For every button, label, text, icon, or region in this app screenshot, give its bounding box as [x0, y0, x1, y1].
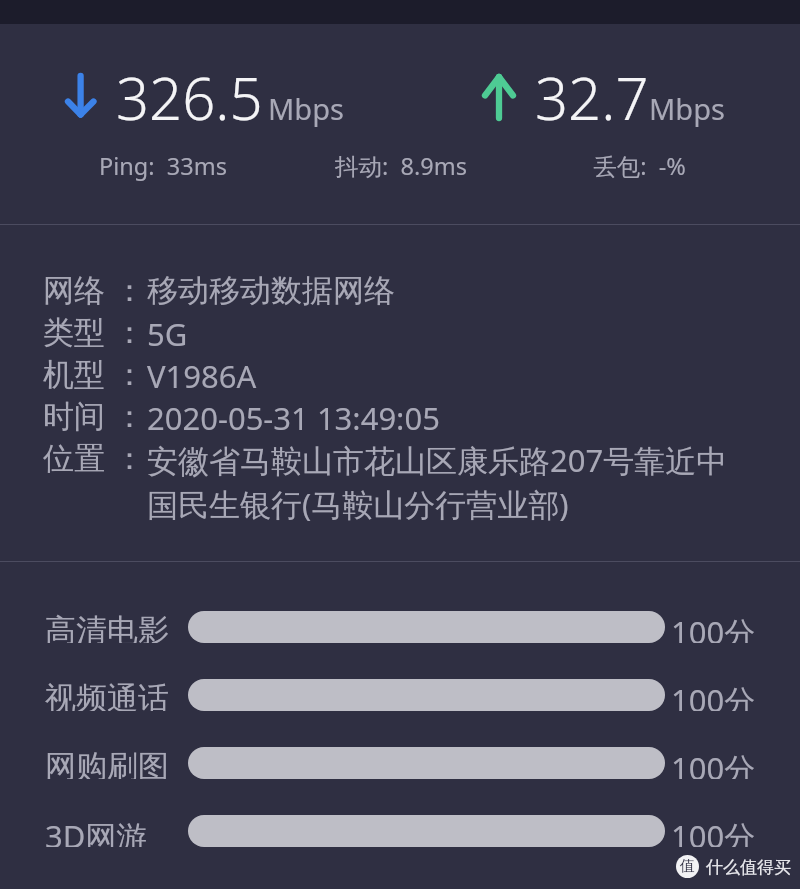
staticText: 值: [680, 857, 695, 876]
staticText: 3D网游: [45, 815, 148, 847]
staticText: 安徽省马鞍山市花山区康乐路207号靠近中 国民生银行(马鞍山分行营业部): [147, 439, 728, 525]
staticText: Ping: 33ms: [99, 150, 227, 182]
staticText: 时间: [43, 397, 105, 436]
staticText: 什么值得买: [706, 857, 791, 878]
staticText: 移动移动数据网络: [147, 271, 395, 310]
staticText: 326.5: [116, 58, 263, 137]
staticText: 抖动: 8.9ms: [335, 150, 467, 182]
staticText: Mbps: [649, 89, 725, 128]
staticText: ：: [114, 355, 145, 394]
staticText: ：: [114, 397, 145, 436]
staticText: 丢包: -%: [593, 150, 686, 182]
staticText: ：: [114, 271, 145, 310]
staticText: 100分: [671, 679, 756, 711]
staticText: 100分: [671, 815, 756, 847]
staticText: V1986A: [147, 355, 257, 397]
staticText: 网络: [43, 271, 105, 310]
staticText: Mbps: [268, 89, 344, 128]
staticText: 类型: [43, 313, 105, 352]
staticText: 100分: [671, 747, 756, 779]
button[interactable]: 3D网游: [0, 815, 800, 847]
staticText: 位置: [43, 439, 105, 478]
staticText: 32.7: [535, 58, 649, 137]
staticText: 机型: [43, 355, 105, 394]
staticText: 视频通话: [45, 679, 169, 711]
staticText: 2020-05-31 13:49:05: [147, 397, 440, 439]
staticText: ：: [114, 439, 145, 478]
other: Download speed: [62, 70, 98, 122]
button[interactable]: 视频通话: [0, 679, 800, 711]
other: Upload speed: [479, 70, 519, 122]
button[interactable]: 高清电影: [0, 611, 800, 643]
staticText: 5G: [147, 313, 188, 355]
button[interactable]: 网购刷图: [0, 747, 800, 779]
staticText: ：: [114, 313, 145, 352]
staticText: 高清电影: [45, 611, 169, 643]
staticText: 网购刷图: [45, 747, 169, 779]
staticText: 100分: [671, 611, 756, 643]
